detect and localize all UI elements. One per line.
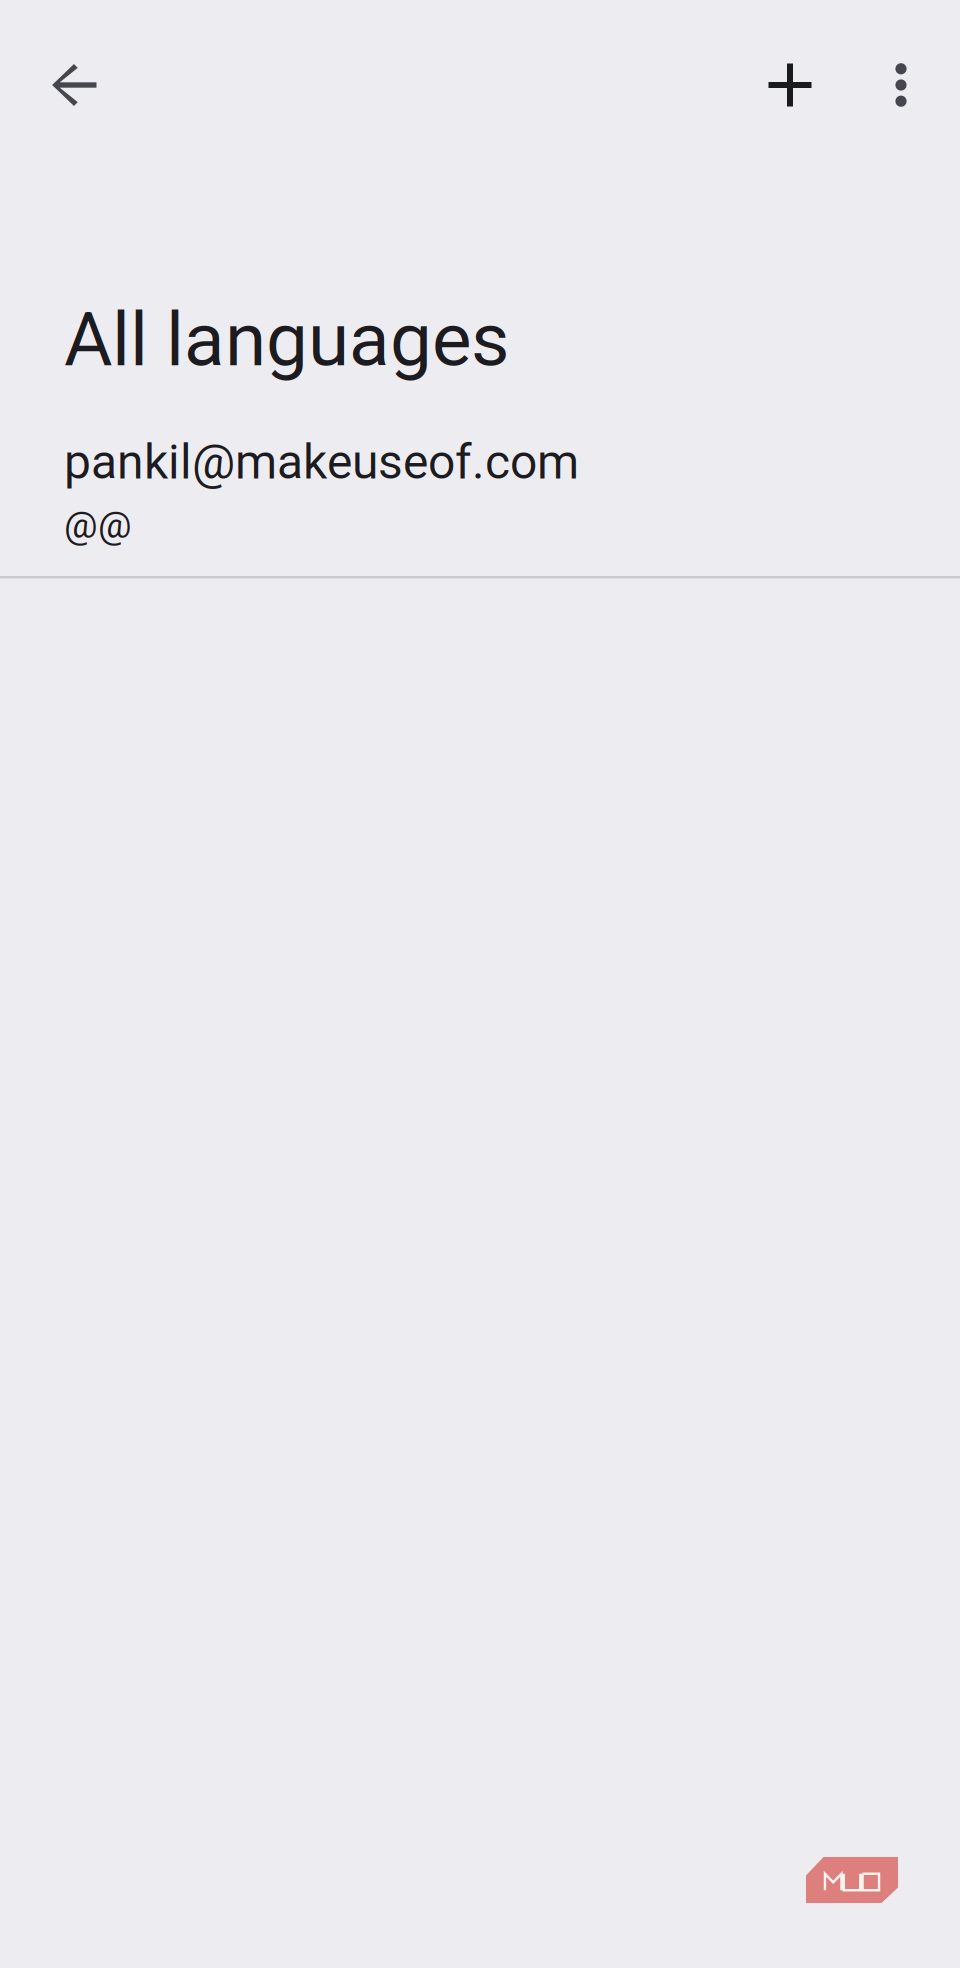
staticText: All languages [64, 296, 509, 383]
button[interactable]: Add language [736, 31, 844, 139]
button[interactable]: Back [21, 31, 129, 139]
staticText: @@ [64, 503, 132, 547]
staticText: pankil@makeuseof.com [64, 434, 579, 490]
button[interactable]: More options [847, 31, 955, 139]
